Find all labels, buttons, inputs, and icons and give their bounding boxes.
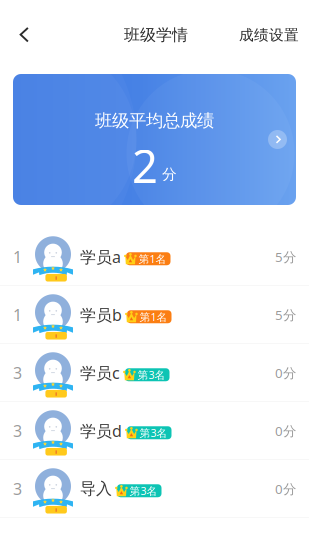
staticText: 5分	[275, 306, 296, 324]
staticText: 3	[13, 420, 22, 441]
button[interactable]: 1	[0, 228, 309, 286]
staticText: 0分	[275, 422, 296, 440]
staticText: 导入	[80, 479, 112, 499]
button[interactable]: 3	[0, 460, 309, 518]
staticText: 学员a	[80, 246, 121, 267]
staticText: 学员d	[80, 420, 122, 441]
button[interactable]: 成绩设置	[239, 6, 309, 64]
staticText: 学员c	[80, 362, 120, 383]
staticText: 第3名	[137, 368, 165, 382]
staticText: 1	[13, 304, 22, 325]
staticText: 0分	[275, 364, 296, 382]
staticText: 5分	[275, 248, 296, 266]
staticText: 第3名	[139, 426, 167, 440]
staticText: 班级学情	[124, 25, 188, 45]
staticText: 3	[13, 362, 22, 383]
staticText: 2	[132, 135, 158, 195]
staticText: 1	[13, 246, 22, 267]
button[interactable]: 班级平均总成绩	[13, 74, 296, 205]
staticText: 3	[13, 478, 22, 499]
staticText: 学员b	[80, 304, 122, 325]
staticText: 0分	[275, 480, 296, 498]
staticText: 第1名	[139, 310, 167, 324]
staticText: 第1名	[138, 252, 166, 266]
staticText: 第3名	[129, 484, 157, 498]
button[interactable]: Back	[0, 6, 49, 64]
staticText: 成绩设置	[239, 26, 299, 44]
button[interactable]: 3	[0, 402, 309, 460]
button[interactable]: 1	[0, 286, 309, 344]
button[interactable]: 3	[0, 344, 309, 402]
staticText: 班级平均总成绩	[95, 110, 214, 131]
staticText: 分	[162, 165, 177, 183]
